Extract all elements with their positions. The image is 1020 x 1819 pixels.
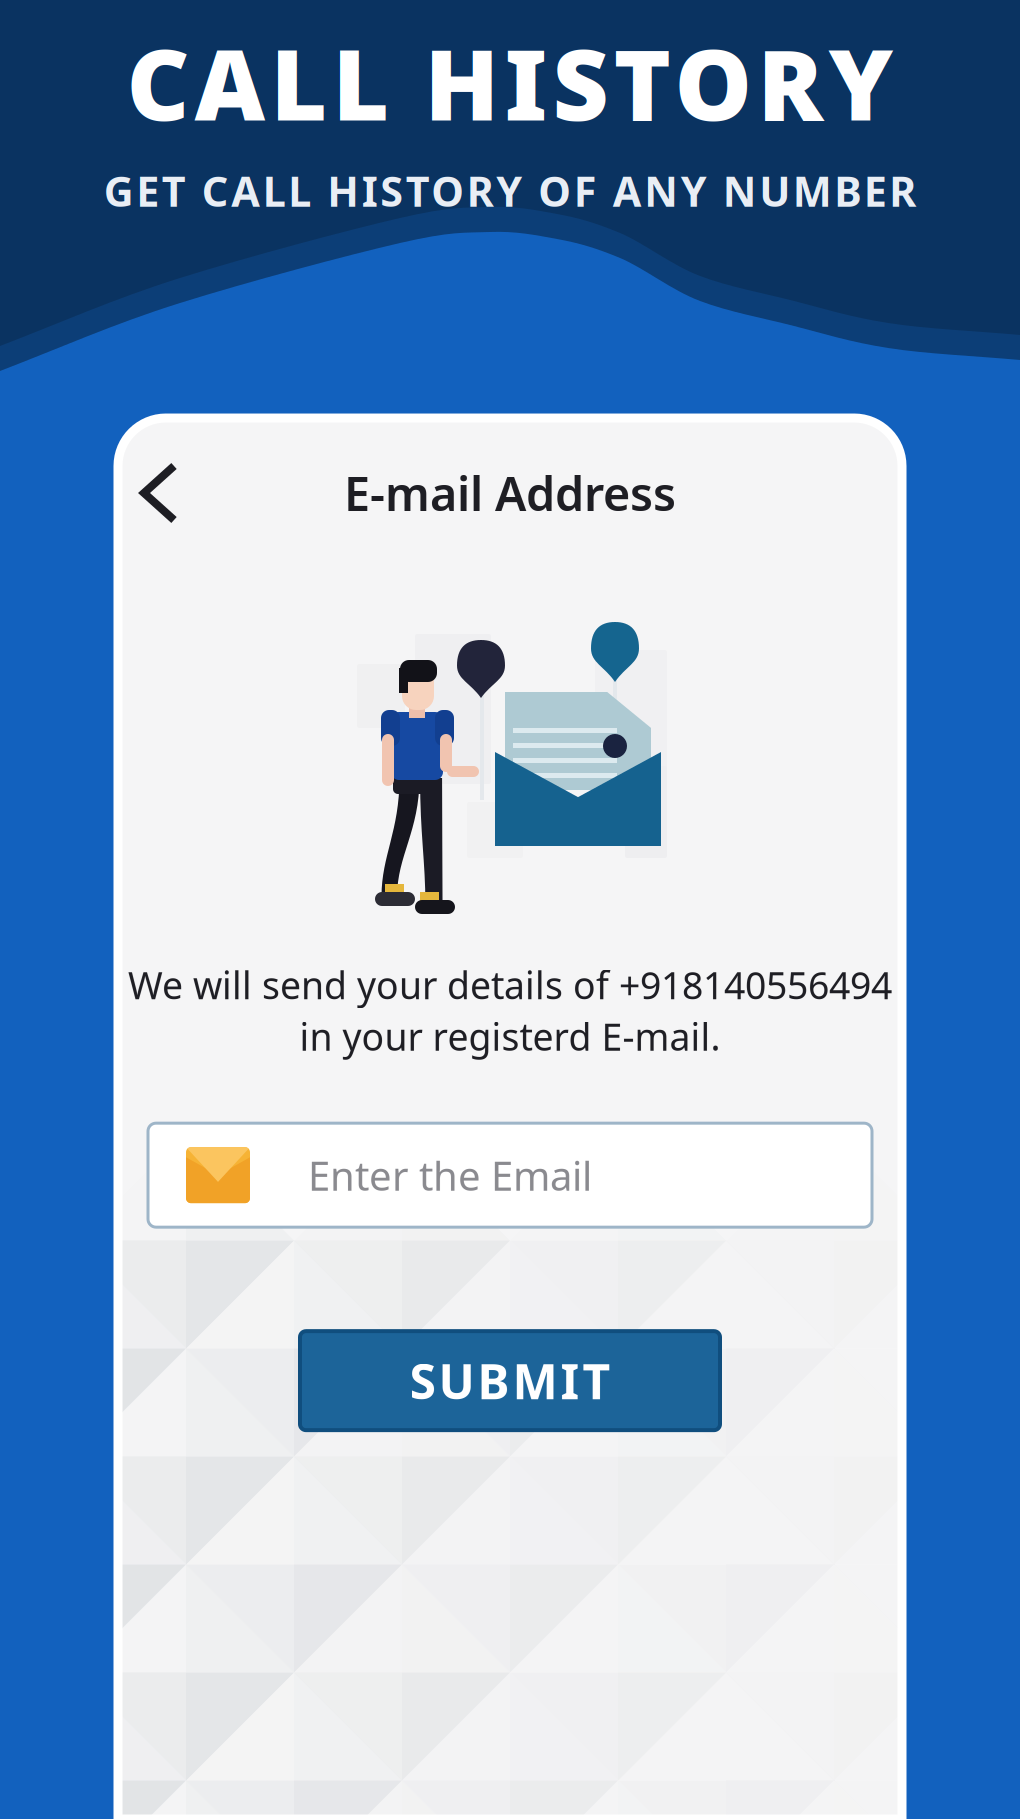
staticText: We will send your details of +9181405564… (128, 960, 892, 1010)
button[interactable]: Back (122, 454, 196, 532)
staticText: in your registerd E-mail. (299, 1012, 720, 1061)
staticText: E-mail Address (344, 462, 676, 524)
staticText: CALL HISTORY (126, 18, 893, 147)
staticText: GET CALL HISTORY OF ANY NUMBER (104, 163, 916, 218)
staticText: Enter the Email (308, 1149, 592, 1202)
staticText: SUBMIT (409, 1349, 610, 1412)
button[interactable]: SUBMIT (300, 1331, 720, 1430)
